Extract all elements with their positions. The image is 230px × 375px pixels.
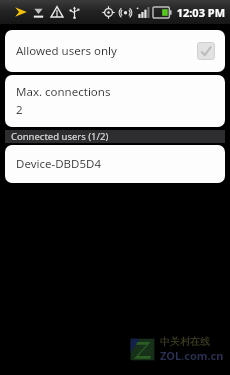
- staticText: 12:03 PM: [176, 5, 225, 20]
- staticText: Max. connections: [16, 84, 111, 100]
- staticText: Device-DBD5D4: [16, 156, 101, 172]
- staticText: Allowed users only: [16, 43, 196, 59]
- button[interactable]: Allowed users only checkbox: [196, 41, 216, 61]
- staticText: 中关村在线: [160, 335, 210, 348]
- staticText: 2: [16, 102, 23, 118]
- staticText: ZOL.com.cn: [160, 348, 224, 363]
- button[interactable]: Device-DBD5D4: [5, 145, 225, 183]
- staticText: Connected users (1/2): [11, 130, 109, 143]
- button[interactable]: Allowed users only: [5, 30, 225, 72]
- button[interactable]: Max. connections: [5, 75, 225, 127]
